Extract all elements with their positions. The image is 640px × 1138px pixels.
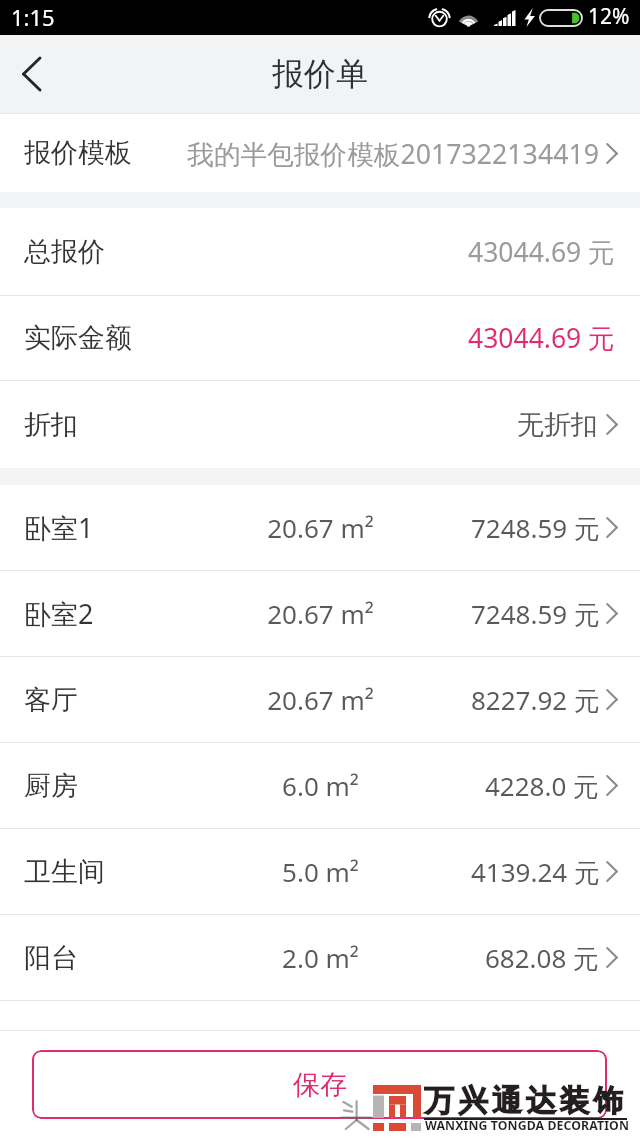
button[interactable]: 卧室2 — [0, 571, 640, 656]
staticText: 1:15 — [11, 2, 55, 32]
button[interactable]: 实际金额 — [0, 296, 640, 380]
staticText: 我的半包报价模板2017322134419 — [187, 135, 599, 171]
staticText: 4228.0 元 — [485, 768, 600, 804]
staticText: 7248.59 元 — [471, 596, 600, 632]
staticText: 20.67 m² — [267, 596, 374, 631]
staticText: 厨房 — [24, 769, 78, 803]
staticText: 报价模板 — [24, 136, 132, 170]
button[interactable]: 厨房 — [0, 743, 640, 828]
button[interactable]: 报价模板 — [0, 114, 640, 192]
staticText: 4139.24 元 — [471, 854, 600, 890]
staticText: 20.67 m² — [267, 682, 374, 717]
staticText: 20.67 m² — [267, 510, 374, 545]
staticText: WANXING TONGDA DECORATION — [424, 1117, 630, 1134]
staticText: 5.0 m² — [282, 854, 359, 889]
button[interactable]: 阳台 — [0, 915, 640, 1000]
staticText: 43044.69 元 — [468, 320, 615, 356]
staticText: 7248.59 元 — [471, 510, 600, 546]
button[interactable]: 卧室1 — [0, 485, 640, 570]
button[interactable]: 客厅 — [0, 657, 640, 742]
button[interactable]: 保存 — [32, 1050, 607, 1119]
staticText: 6.0 m² — [282, 768, 359, 803]
button[interactable]: 折扣 — [0, 381, 640, 468]
staticText: 12% — [588, 2, 630, 31]
staticText: 总报价 — [24, 235, 105, 269]
staticText: 8227.92 元 — [471, 682, 600, 718]
staticText: 阳台 — [24, 941, 78, 975]
button[interactable]: 卫生间 — [0, 829, 640, 914]
staticText: 682.08 元 — [485, 940, 600, 976]
staticText: 报价单 — [272, 54, 368, 94]
staticText: 2.0 m² — [282, 940, 359, 975]
staticText: 卧室1 — [24, 509, 94, 546]
staticText: 实际金额 — [24, 321, 132, 355]
staticText: 折扣 — [24, 408, 78, 442]
button[interactable]: 总报价 — [0, 208, 640, 295]
staticText: 卫生间 — [24, 855, 105, 889]
staticText: 万兴通达装饰 — [424, 1082, 628, 1120]
staticText: 客厅 — [24, 683, 78, 717]
button[interactable]: Back — [0, 35, 66, 113]
staticText: 无折扣 — [517, 408, 598, 442]
staticText: 43044.69 元 — [468, 234, 615, 270]
staticText: 保存 — [293, 1068, 347, 1102]
staticText: 卧室2 — [24, 595, 94, 632]
